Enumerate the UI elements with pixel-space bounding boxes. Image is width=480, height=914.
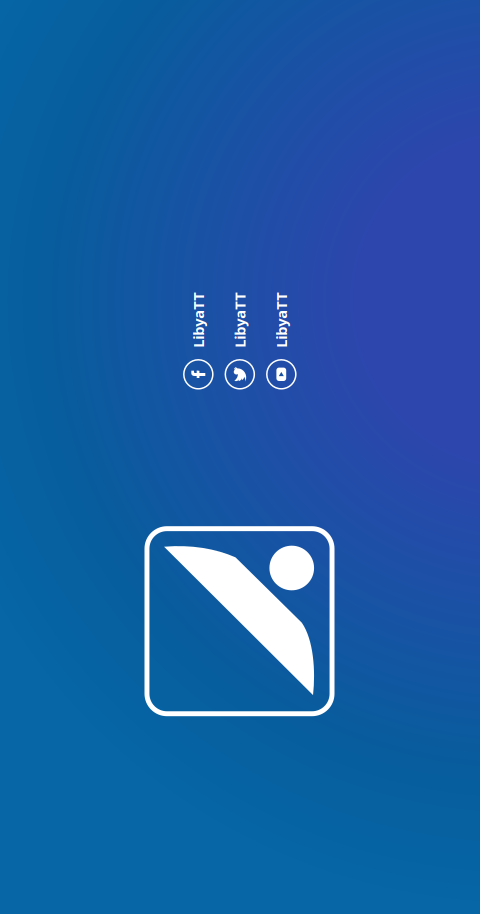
staticText: LibyaTT — [212, 311, 267, 330]
button[interactable]: LibyaTT on Facebook — [179, 292, 217, 389]
staticText: LibyaTT — [254, 311, 309, 330]
button[interactable]: LibyaTT on Twitter — [221, 292, 259, 389]
button[interactable]: LibyaTT on YouTube — [262, 292, 300, 389]
staticText: LibyaTT — [171, 311, 226, 330]
